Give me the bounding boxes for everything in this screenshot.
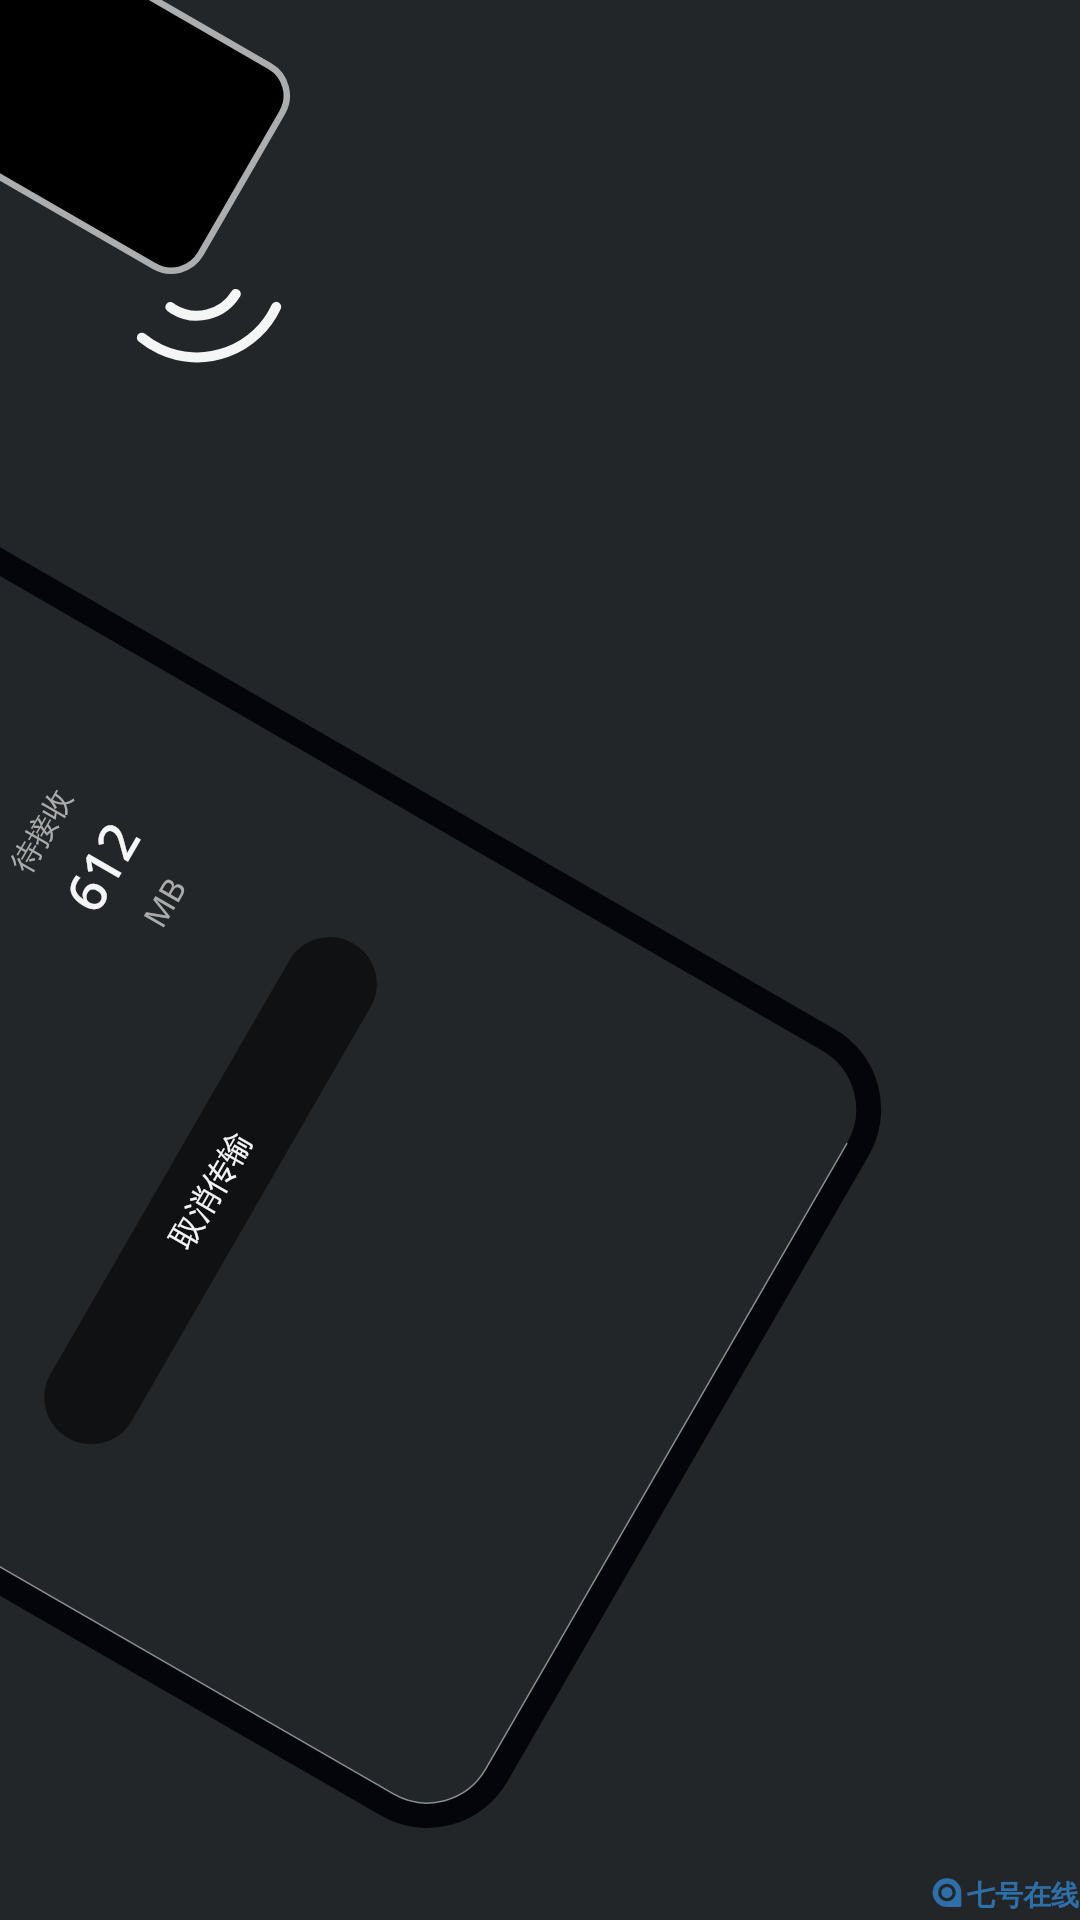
button[interactable]: 取消传输 [27,920,394,1461]
staticText: 七号在线 [967,1878,1079,1913]
staticText: 待接收 [3,782,81,879]
staticText: MB [133,870,196,935]
staticText: 取消传输 [161,1125,260,1256]
staticText: 612 [47,809,155,924]
